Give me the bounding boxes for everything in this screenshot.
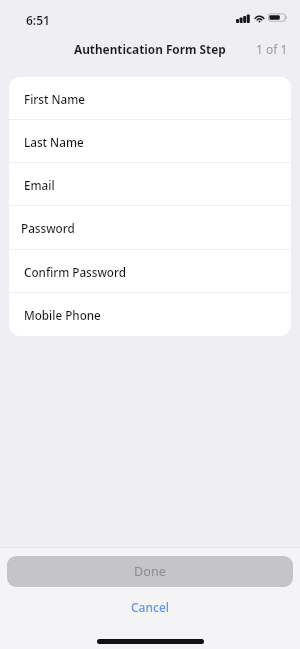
button[interactable]: Email [9,162,291,205]
staticText: Done [134,562,166,579]
staticText: 6:51 [26,12,50,28]
button[interactable]: Cancel [0,587,300,619]
button[interactable]: Last Name [9,119,291,163]
staticText: First Name [24,91,85,107]
button[interactable]: Confirm Password [9,249,291,292]
staticText: Confirm Password [24,264,126,280]
button[interactable]: First Name [9,77,291,119]
button[interactable]: Password [9,205,291,248]
button[interactable]: Mobile Phone [9,292,291,336]
staticText: Mobile Phone [24,307,101,323]
staticText: Password [21,220,75,236]
button[interactable]: Done [7,556,293,587]
staticText: Last Name [24,134,84,150]
staticText: Cancel [131,599,170,615]
staticText: Email [24,177,55,193]
staticText: Authentication Form Step [74,41,226,57]
staticText: 1 of 1 [256,41,288,57]
